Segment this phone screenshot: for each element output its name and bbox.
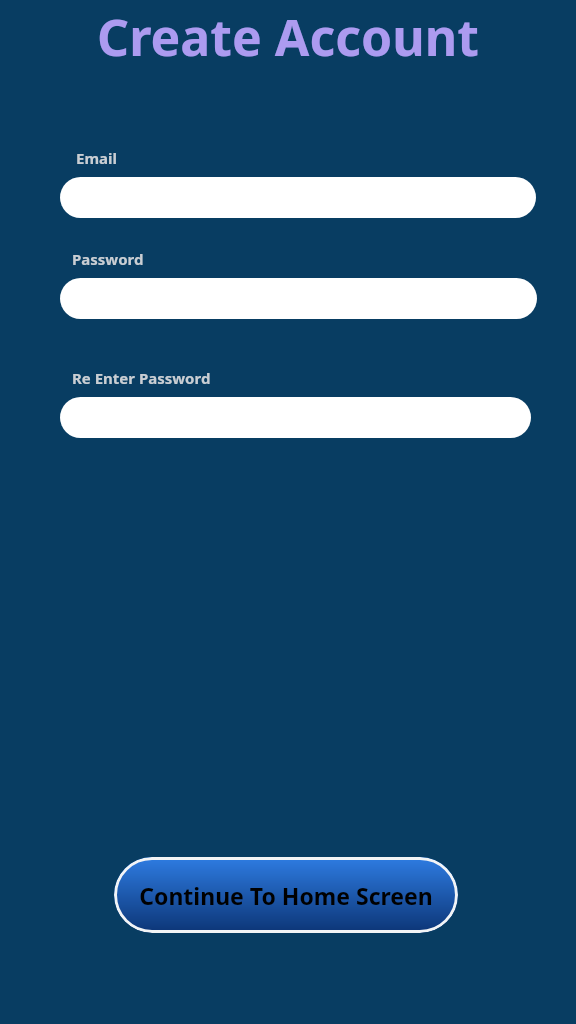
- staticText: Password: [72, 249, 144, 269]
- button[interactable]: Continue To Home Screen: [114, 857, 458, 933]
- button[interactable]: Email: [60, 177, 536, 218]
- button[interactable]: Re Enter Password: [60, 397, 531, 438]
- staticText: Re Enter Password: [72, 368, 211, 388]
- button[interactable]: Password: [60, 278, 537, 319]
- staticText: Continue To Home Screen: [139, 880, 433, 911]
- staticText: Email: [76, 148, 117, 168]
- staticText: Create Account: [0, 3, 576, 71]
